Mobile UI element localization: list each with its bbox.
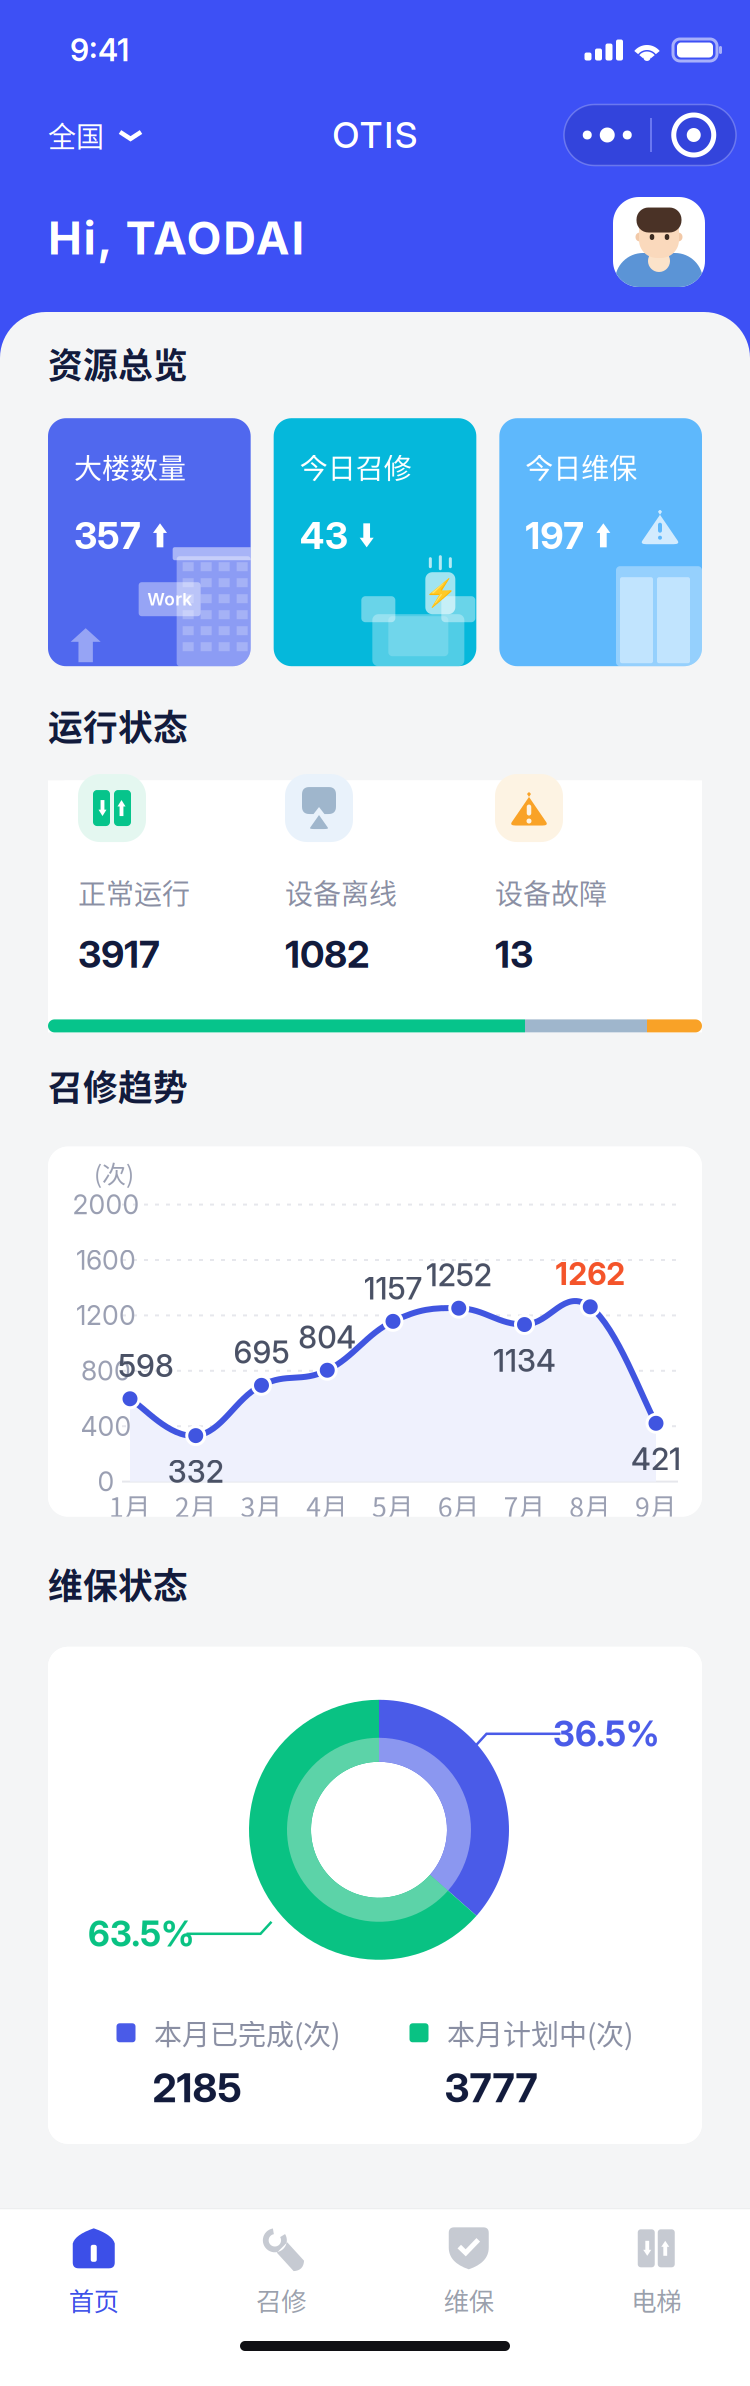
staticText: 召修 [256, 2281, 306, 2318]
staticText: 4月 [306, 1486, 348, 1525]
staticText: 资源总览 [48, 338, 188, 388]
staticText: 43 [300, 513, 348, 558]
staticText: 1262 [555, 1255, 625, 1292]
staticText: 3月 [240, 1486, 282, 1525]
staticText: OTIS [332, 113, 418, 157]
button[interactable]: Work [48, 418, 251, 666]
staticText: 1月 [109, 1486, 151, 1525]
staticText: 1600 [76, 1244, 136, 1276]
staticText: 357 [74, 513, 141, 558]
staticText: 设备故障 [495, 872, 607, 912]
staticText: 大楼数量 [74, 446, 186, 487]
staticText: 2185 [152, 2064, 241, 2112]
staticText: 63.5% [88, 1913, 194, 1955]
staticText: 8月 [569, 1486, 611, 1525]
button[interactable]: Close mini program [652, 104, 736, 165]
staticText: 332 [168, 1453, 224, 1490]
staticText: 9:41 [70, 31, 129, 68]
staticText: 1134 [493, 1342, 556, 1379]
button[interactable]: 首页 [0, 2209, 187, 2330]
staticText: 421 [631, 1441, 681, 1478]
staticText: 800 [81, 1355, 131, 1387]
staticText: 1252 [426, 1257, 492, 1294]
staticText: 设备离线 [285, 872, 397, 912]
staticText: 正常运行 [78, 872, 190, 912]
button[interactable]: 召修 [187, 2209, 375, 2330]
staticText: 2000 [72, 1188, 139, 1221]
staticText: 197 [525, 513, 584, 558]
staticText: 1082 [285, 932, 370, 977]
button[interactable]: 今日维保 [499, 418, 702, 666]
staticText: 7月 [503, 1486, 545, 1525]
staticText: 5月 [372, 1486, 414, 1525]
button[interactable]: Profile [613, 197, 705, 287]
staticText: 电梯 [631, 2281, 681, 2318]
staticText: 6月 [438, 1486, 480, 1525]
staticText: 13 [495, 932, 533, 977]
staticText: 2月 [175, 1486, 217, 1525]
staticText: 1200 [76, 1299, 136, 1332]
button[interactable]: ⚡ [274, 418, 476, 666]
staticText: 维保 [444, 2281, 494, 2318]
staticText: 本月已完成(次) [154, 2012, 340, 2053]
staticText: 本月计划中(次) [447, 2012, 633, 2053]
staticText: 598 [118, 1347, 174, 1384]
button[interactable]: 电梯 [562, 2209, 750, 2330]
staticText: Work [147, 589, 192, 610]
staticText: 695 [233, 1334, 289, 1371]
staticText: 首页 [69, 2281, 119, 2318]
staticText: 维保状态 [48, 1559, 188, 1609]
staticText: 9月 [635, 1486, 677, 1525]
staticText: 0 [97, 1465, 114, 1498]
staticText: 今日召修 [300, 446, 412, 487]
button[interactable]: 全国 [0, 103, 153, 167]
staticText: (次) [94, 1155, 134, 1190]
staticText: 400 [80, 1410, 131, 1442]
button[interactable]: 维保 [375, 2209, 562, 2330]
staticText: 36.5% [553, 1713, 659, 1755]
staticText: 运行状态 [48, 700, 188, 750]
staticText: 今日维保 [525, 446, 637, 487]
staticText: 1157 [363, 1270, 422, 1307]
staticText: 3777 [444, 2064, 537, 2112]
staticText: 804 [298, 1319, 356, 1356]
staticText: ⚡ [424, 578, 457, 609]
staticText: 召修趋势 [48, 1060, 188, 1111]
staticText: 全国 [48, 115, 104, 155]
button[interactable]: More [564, 104, 650, 165]
staticText: 3917 [78, 932, 160, 977]
staticText: Hi, TAODAI [48, 211, 304, 265]
